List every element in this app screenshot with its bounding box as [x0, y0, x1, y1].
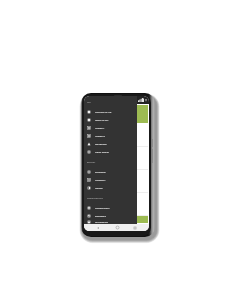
- button[interactable]: [84, 124, 149, 146]
- staticText: Alquiler I: [95, 127, 105, 130]
- staticText: USO: [87, 101, 91, 103]
- staticText: Documentos: [95, 221, 109, 224]
- staticText: Configuracion: [95, 207, 110, 210]
- button[interactable]: Back: [94, 224, 102, 231]
- button[interactable]: [84, 193, 149, 215]
- button[interactable]: Configuracion: [84, 204, 137, 212]
- button[interactable]: Recents: [131, 224, 139, 231]
- button[interactable]: Inventario: [84, 168, 137, 176]
- staticText: Estadistica: [95, 215, 106, 218]
- button[interactable]: Traspasos: [84, 176, 137, 184]
- button[interactable]: [85, 105, 148, 123]
- button[interactable]: Documentos: [84, 220, 137, 224]
- button[interactable]: Alquiler II: [84, 132, 137, 140]
- button[interactable]: Carga Rapida: [84, 148, 137, 156]
- staticText: Inventario: [95, 171, 106, 174]
- staticText: Pendientes: [95, 143, 107, 146]
- button[interactable]: Pendientes: [84, 140, 137, 148]
- staticText: Alquiler II: [95, 135, 105, 138]
- staticText: ADMINISTRACION: [87, 197, 103, 199]
- button[interactable]: Valores: [84, 184, 137, 192]
- staticText: Traspasos: [95, 179, 106, 182]
- button[interactable]: Consulta de Luz: [84, 108, 137, 116]
- staticText: Gasto de Luz: [95, 119, 109, 122]
- staticText: Valores: [95, 187, 103, 190]
- button[interactable]: Home: [113, 224, 121, 231]
- button[interactable]: Gasto de Luz: [84, 116, 137, 124]
- button[interactable]: Estadistica: [84, 212, 137, 220]
- button[interactable]: Alquiler I: [84, 124, 137, 132]
- button[interactable]: [84, 147, 149, 169]
- staticText: RECADOS: [87, 161, 96, 163]
- button[interactable]: [84, 170, 149, 192]
- staticText: Consulta de Luz: [95, 111, 112, 114]
- button[interactable]: [85, 216, 148, 223]
- staticText: Carga Rapida: [95, 151, 109, 154]
